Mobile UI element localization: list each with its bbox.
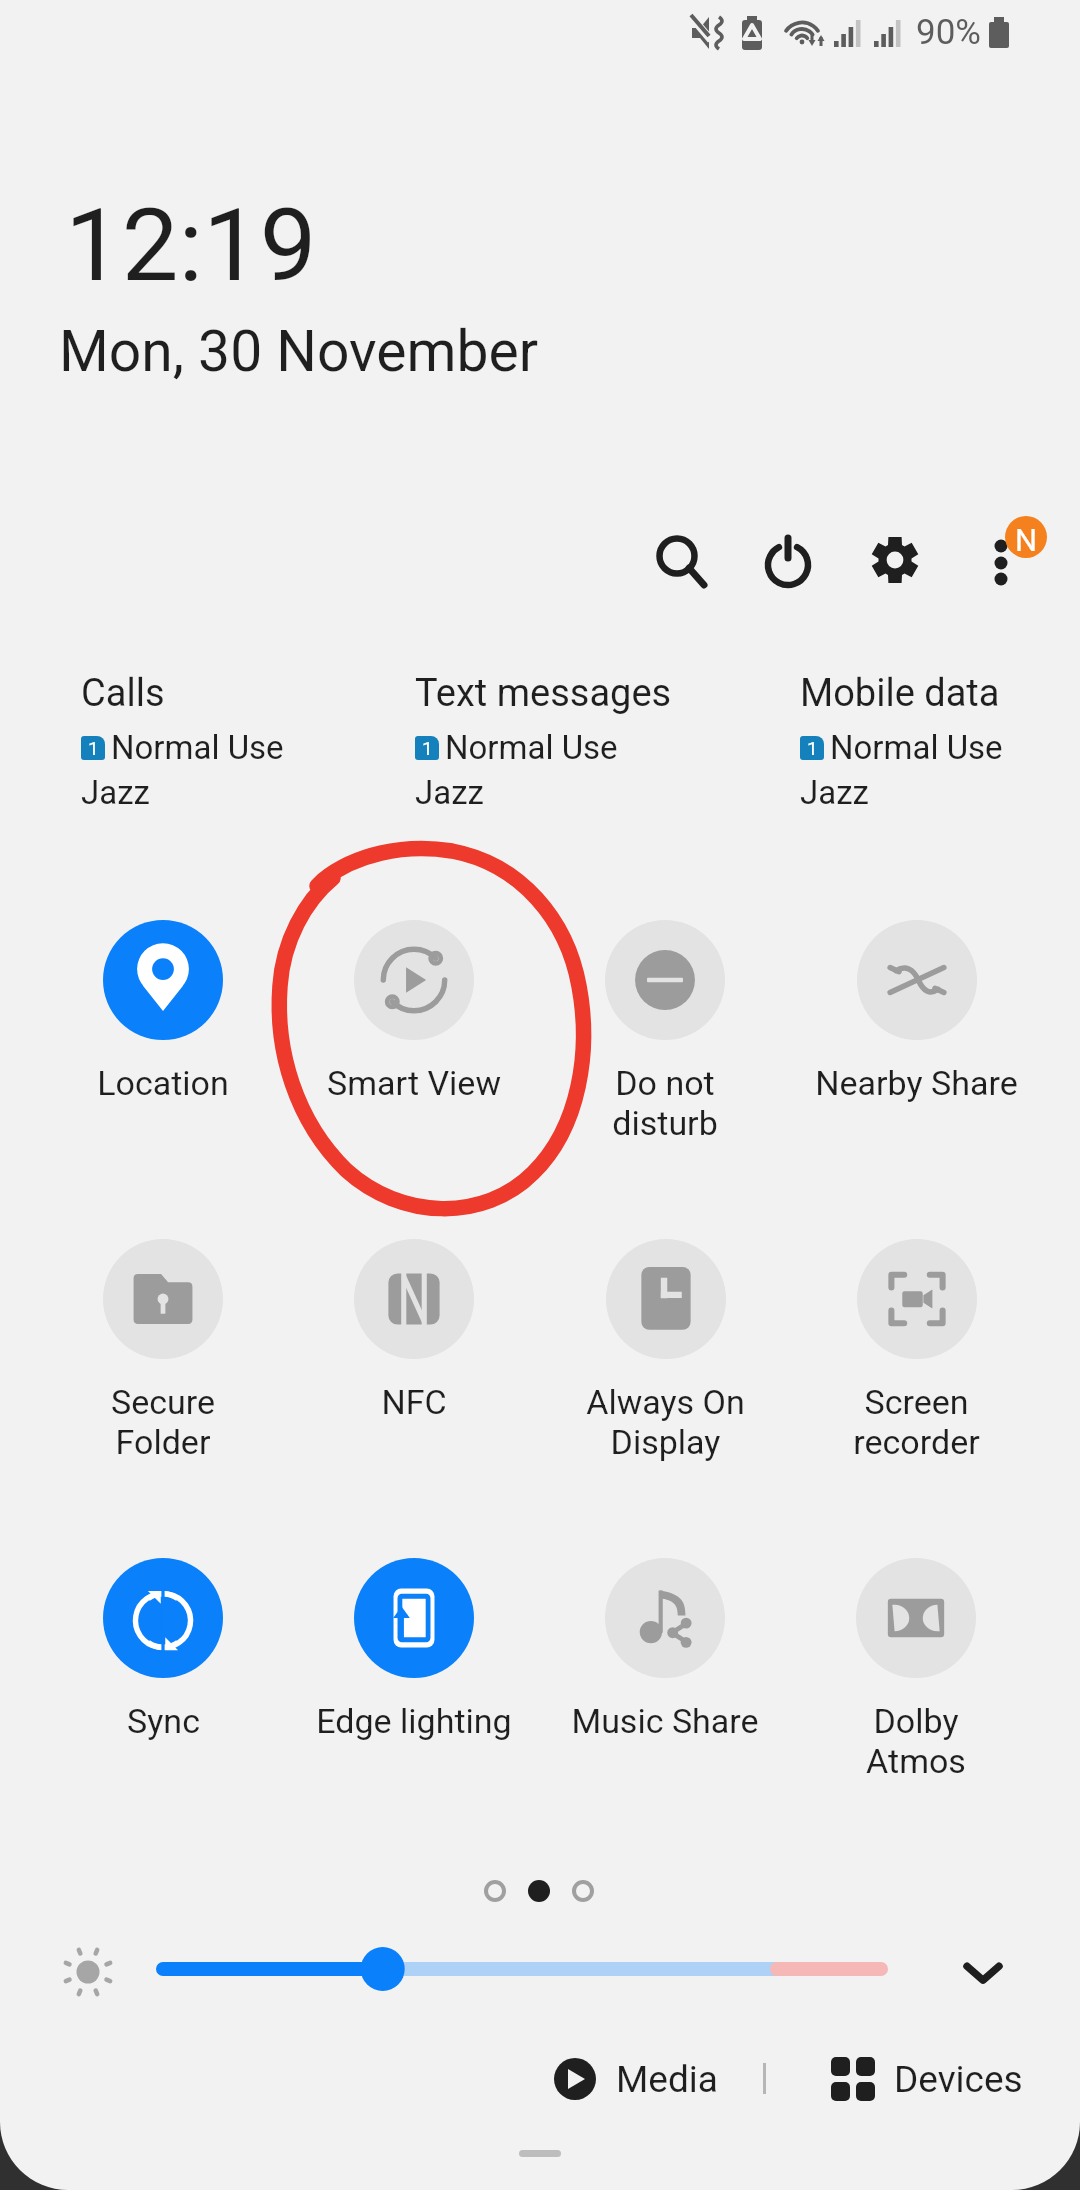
staticText: Do not disturb [612, 1063, 718, 1143]
staticText: Normal Use [830, 728, 1003, 767]
button[interactable]: Page indicator [470, 1866, 610, 1916]
button[interactable]: More options [955, 506, 1065, 616]
button[interactable]: Brightness [147, 1940, 917, 2000]
button[interactable]: Search [627, 511, 727, 611]
staticText: Media [616, 2058, 718, 2101]
staticText: Calls [81, 671, 165, 716]
button[interactable]: Dolby Atmos [796, 1558, 1036, 1788]
button[interactable]: NFC [294, 1239, 534, 1469]
staticText: Dolby Atmos [866, 1701, 966, 1781]
button[interactable]: Always On Display [545, 1239, 785, 1469]
button[interactable]: Do not disturb [545, 920, 785, 1150]
staticText: Text messages [415, 671, 672, 716]
staticText: Always On Display [586, 1382, 745, 1462]
staticText: NFC [381, 1382, 447, 1422]
button[interactable]: Devices [818, 2044, 1023, 2114]
staticText: Music Share [571, 1701, 759, 1741]
staticText: Sync [127, 1701, 200, 1741]
staticText: Devices [894, 2058, 1023, 2101]
button[interactable]: Sync [43, 1558, 283, 1788]
staticText: Normal Use [445, 728, 618, 767]
button[interactable]: Music Share [545, 1558, 785, 1788]
button[interactable]: Settings [845, 511, 945, 611]
staticText: Normal Use [111, 728, 284, 767]
staticText: N [1015, 522, 1038, 558]
staticText: Edge lighting [316, 1701, 512, 1741]
staticText: Location [97, 1063, 229, 1103]
staticText: Secure Folder [111, 1382, 215, 1462]
button[interactable]: Secure Folder [43, 1239, 283, 1469]
staticText: Nearby Share [815, 1063, 1018, 1103]
button[interactable]: Nearby Share [796, 920, 1036, 1150]
button[interactable]: Edge lighting [294, 1558, 534, 1788]
staticText: Mon, 30 November [59, 318, 539, 385]
button[interactable]: Power off [738, 511, 838, 611]
staticText: Smart View [327, 1063, 501, 1103]
staticText: 1 [422, 737, 433, 759]
staticText: Screen recorder [853, 1382, 980, 1462]
staticText: Mobile data [800, 671, 1000, 716]
staticText: Jazz [415, 773, 484, 812]
staticText: 90% [916, 12, 981, 53]
button[interactable]: Text messages [415, 671, 672, 812]
button[interactable]: Calls [81, 671, 284, 812]
button[interactable]: Screen recorder [796, 1239, 1036, 1469]
staticText: 12:19 [65, 186, 317, 304]
staticText: 1 [88, 737, 99, 759]
staticText: 1 [807, 737, 818, 759]
staticText: Jazz [81, 773, 150, 812]
button[interactable]: Expand quick settings [943, 1933, 1023, 2013]
button[interactable]: Location [43, 920, 283, 1150]
button[interactable]: Smart View [294, 920, 534, 1150]
staticText: Jazz [800, 773, 869, 812]
button[interactable]: Media [540, 2044, 718, 2114]
button[interactable]: Mobile data [800, 671, 1003, 812]
